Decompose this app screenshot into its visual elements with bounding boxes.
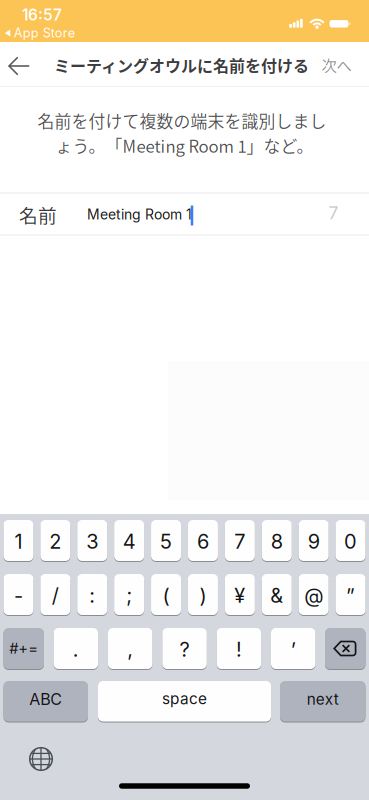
- staticText: :: [89, 583, 95, 608]
- button[interactable]: ’: [271, 627, 315, 669]
- staticText: -: [14, 583, 23, 608]
- staticText: ”: [346, 583, 355, 608]
- button[interactable]: .: [54, 627, 98, 669]
- button[interactable]: 8: [262, 519, 292, 561]
- staticText: 名前を付けて複数の端末を識別しまし: [37, 108, 326, 133]
- button[interactable]: ”: [335, 573, 365, 615]
- staticText: ABC: [29, 690, 62, 709]
- button[interactable]: 3: [77, 519, 107, 561]
- staticText: 5: [160, 529, 172, 554]
- staticText: 名前: [19, 201, 57, 228]
- staticText: 6: [197, 529, 209, 554]
- button[interactable]: 次へ: [321, 53, 351, 76]
- staticText: 16:57: [22, 6, 62, 24]
- button[interactable]: ?: [162, 627, 207, 669]
- button[interactable]: Next keyboard: [28, 746, 54, 772]
- button[interactable]: !: [217, 627, 261, 669]
- button[interactable]: Delete: [325, 627, 365, 669]
- button[interactable]: Back: [8, 56, 30, 75]
- button[interactable]: @: [299, 573, 329, 615]
- staticText: #+=: [9, 640, 38, 657]
- staticText: 8: [271, 529, 283, 554]
- button[interactable]: &: [262, 573, 292, 615]
- button[interactable]: 9: [299, 519, 329, 561]
- staticText: ): [199, 583, 206, 608]
- button[interactable]: :: [77, 573, 107, 615]
- staticText: ,: [127, 637, 133, 662]
- staticText: .: [73, 637, 79, 662]
- staticText: 9: [308, 529, 320, 554]
- button[interactable]: (: [151, 573, 181, 615]
- staticText: ¥: [234, 583, 245, 608]
- staticText: 7: [328, 202, 338, 223]
- button[interactable]: ;: [114, 573, 144, 615]
- button[interactable]: 5: [151, 519, 181, 561]
- button[interactable]: Back to App Store: [4, 25, 75, 41]
- button[interactable]: 6: [188, 519, 218, 561]
- staticText: 7: [234, 529, 245, 554]
- staticText: 2: [49, 529, 61, 554]
- button[interactable]: #+=: [3, 627, 44, 669]
- staticText: 次へ: [321, 53, 351, 76]
- staticText: &: [270, 583, 283, 608]
- staticText: (: [162, 583, 169, 608]
- staticText: 0: [344, 529, 357, 554]
- button[interactable]: space: [98, 680, 271, 722]
- staticText: next: [307, 690, 339, 709]
- staticText: !: [236, 637, 242, 662]
- button[interactable]: 7: [225, 519, 255, 561]
- staticText: ミーティングオウルに名前を付ける: [54, 53, 309, 77]
- staticText: ;: [126, 583, 132, 608]
- button[interactable]: -: [3, 573, 33, 615]
- staticText: /: [52, 583, 59, 608]
- staticText: space: [162, 689, 207, 708]
- button[interactable]: ¥: [225, 573, 255, 615]
- staticText: 4: [123, 529, 136, 554]
- button[interactable]: Meeting Room 1: [87, 206, 192, 223]
- button[interactable]: next: [280, 680, 365, 722]
- button[interactable]: ,: [108, 627, 152, 669]
- staticText: 1: [14, 529, 22, 554]
- button[interactable]: 4: [114, 519, 144, 561]
- button[interactable]: ): [188, 573, 218, 615]
- staticText: App Store: [14, 25, 75, 41]
- staticText: 3: [86, 529, 98, 554]
- button[interactable]: 1: [3, 519, 33, 561]
- button[interactable]: /: [40, 573, 70, 615]
- staticText: Meeting Room 1: [87, 206, 192, 223]
- staticText: ?: [180, 637, 190, 662]
- staticText: ’: [291, 637, 296, 662]
- button[interactable]: 0: [335, 519, 365, 561]
- button[interactable]: ABC: [3, 680, 88, 722]
- button[interactable]: 2: [40, 519, 70, 561]
- staticText: ょう。「Meeting Room 1」など。: [55, 133, 313, 158]
- staticText: @: [304, 583, 323, 608]
